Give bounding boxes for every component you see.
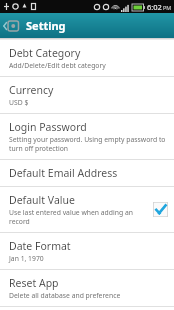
button[interactable]: Debt Category <box>0 40 174 76</box>
button[interactable]: Currency <box>0 77 174 113</box>
staticText: Delete all database and preference <box>9 291 121 300</box>
staticText: Jan 1, 1970 <box>9 254 44 263</box>
other: Navigate up <box>3 17 21 35</box>
button[interactable]: Default Value <box>0 187 174 232</box>
button[interactable]: Reset App <box>0 270 174 306</box>
staticText: Use last entered value when adding an re… <box>9 208 149 226</box>
button[interactable]: Login Password <box>0 114 174 159</box>
staticText: Setting your password. Using empty passw… <box>9 135 168 153</box>
staticText: USD $ <box>9 98 29 107</box>
staticText: PM <box>163 4 172 11</box>
staticText: Date Format <box>9 239 71 253</box>
button[interactable]: Navigate up <box>0 13 174 38</box>
staticText: Add/Delete/Edit debt category <box>9 61 106 70</box>
staticText: 6:02 <box>147 2 162 12</box>
button[interactable]: Default Email Address <box>0 160 174 186</box>
staticText: Reset App <box>9 276 59 290</box>
staticText: Login Password <box>9 120 87 134</box>
staticText: Currency <box>9 83 54 97</box>
staticText: Setting <box>26 18 66 33</box>
button[interactable]: Date Format <box>0 233 174 269</box>
staticText: Debt Category <box>9 46 81 60</box>
staticText: Default Value <box>9 193 75 207</box>
button[interactable]: Default Value checkbox <box>153 202 168 217</box>
staticText: Default Email Address <box>9 166 118 180</box>
